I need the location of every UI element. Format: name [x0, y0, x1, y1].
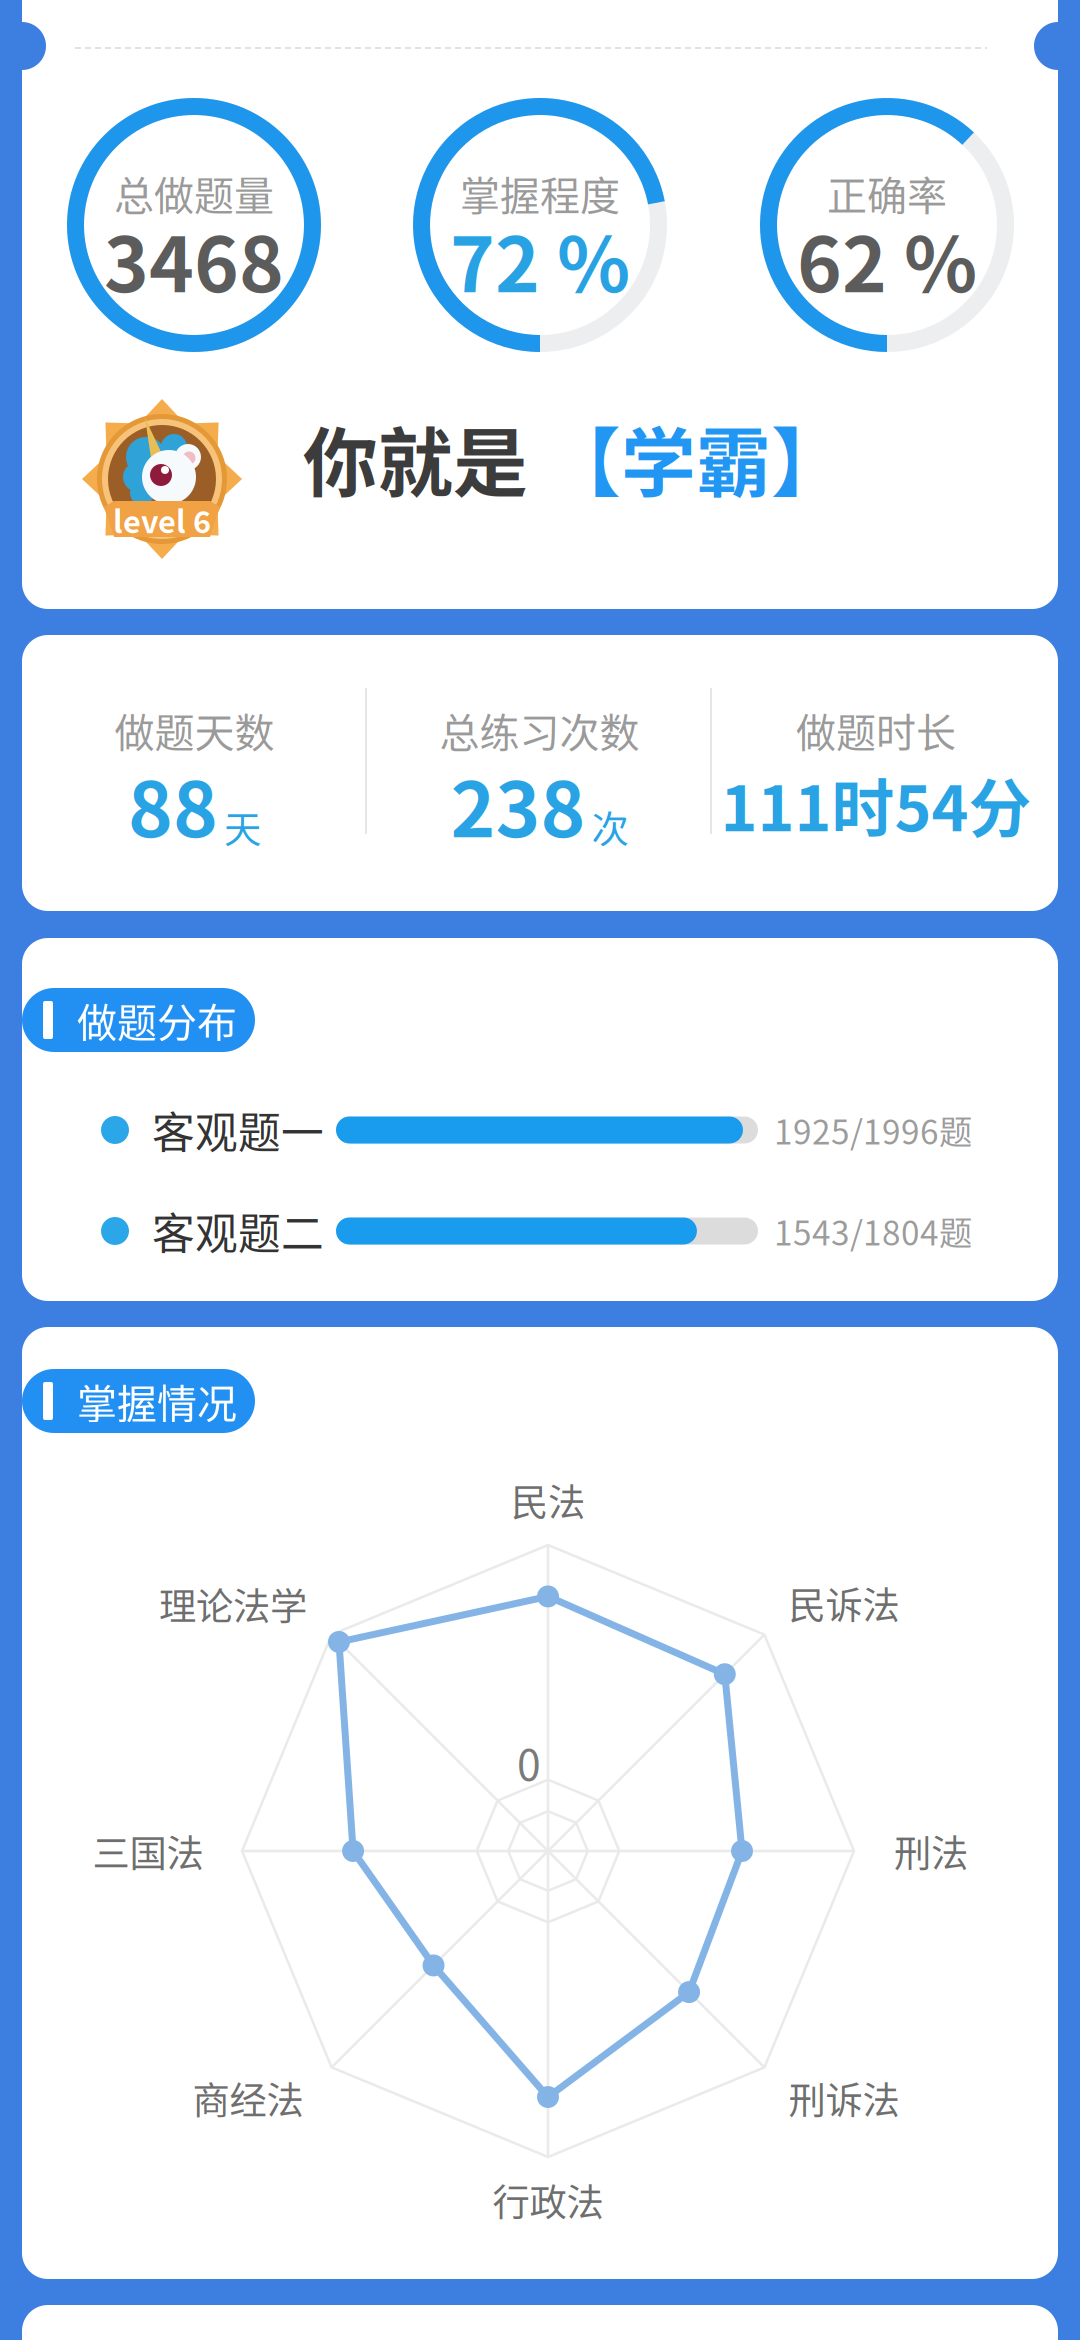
staticText: 理论法学	[159, 1577, 307, 1631]
staticText: 掌握情况	[77, 1372, 237, 1430]
button[interactable]	[22, 2305, 1058, 2340]
staticText: 正确率	[827, 164, 947, 222]
staticText: 72 %	[450, 204, 630, 314]
staticText: 【学霸】	[546, 404, 846, 512]
staticText: 88	[128, 749, 218, 859]
staticText: 做题时长	[796, 701, 956, 759]
button[interactable]: 做题天数	[22, 635, 1058, 911]
staticText: 客观题一	[152, 1099, 324, 1161]
staticText: level 6	[113, 498, 211, 542]
staticText: 刑诉法	[788, 2071, 899, 2125]
staticText: 掌握程度	[460, 164, 620, 222]
staticText: 111时54分	[720, 759, 1031, 849]
button[interactable]: 总做题量	[22, 0, 1058, 609]
staticText: 商经法	[192, 2071, 303, 2125]
staticText: 总做题量	[114, 164, 274, 222]
staticText: 1925/1996题	[774, 1106, 972, 1154]
staticText: 民诉法	[788, 1576, 899, 1630]
staticText: 三国法	[92, 1824, 203, 1878]
staticText: 民法	[511, 1473, 585, 1527]
staticText: 次	[591, 800, 628, 854]
staticText: 做题分布	[77, 991, 237, 1049]
staticText: 天	[224, 800, 261, 854]
staticText: 238	[450, 749, 585, 859]
staticText: 0	[517, 1731, 541, 1793]
staticText: 做题天数	[114, 701, 274, 759]
staticText: 3468	[104, 204, 284, 314]
staticText: 行政法	[492, 2173, 603, 2227]
staticText: 62 %	[797, 204, 977, 314]
staticText: 客观题二	[152, 1200, 324, 1262]
staticText: 总练习次数	[439, 701, 639, 759]
staticText: 1543/1804题	[774, 1207, 972, 1255]
staticText: 你就是	[303, 404, 528, 512]
staticText: 刑法	[894, 1824, 968, 1878]
